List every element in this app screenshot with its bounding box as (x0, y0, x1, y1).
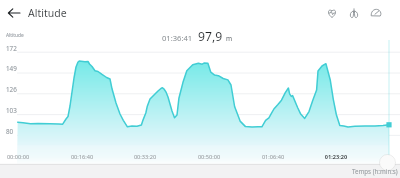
staticText: 97,9 (198, 28, 223, 45)
staticText: 00:00:00 (0, 153, 43, 161)
staticText: m (226, 34, 233, 43)
button[interactable]: Altitude (28, 6, 67, 20)
staticText: 00:33:20 (120, 153, 170, 161)
staticText: 01:06:40 (248, 153, 298, 161)
button[interactable]: Pace (367, 4, 385, 22)
staticText: 01:36:41 (162, 33, 193, 43)
staticText: 149 (6, 64, 17, 73)
staticText: 172 (6, 44, 17, 53)
staticText: 80 (6, 127, 14, 136)
button[interactable]: Blood oxygen (345, 4, 363, 22)
staticText: 00:50:00 (184, 153, 234, 161)
staticText: Temps (h:min:s) (352, 167, 398, 175)
staticText: Altitude (6, 32, 24, 39)
button[interactable]: Heart rate (323, 4, 341, 22)
staticText: 103 (6, 106, 17, 115)
button[interactable]: Back (4, 3, 24, 23)
staticText: 126 (6, 85, 17, 94)
staticText: 00:16:40 (57, 153, 107, 161)
staticText: 01:23:20 (311, 153, 361, 161)
